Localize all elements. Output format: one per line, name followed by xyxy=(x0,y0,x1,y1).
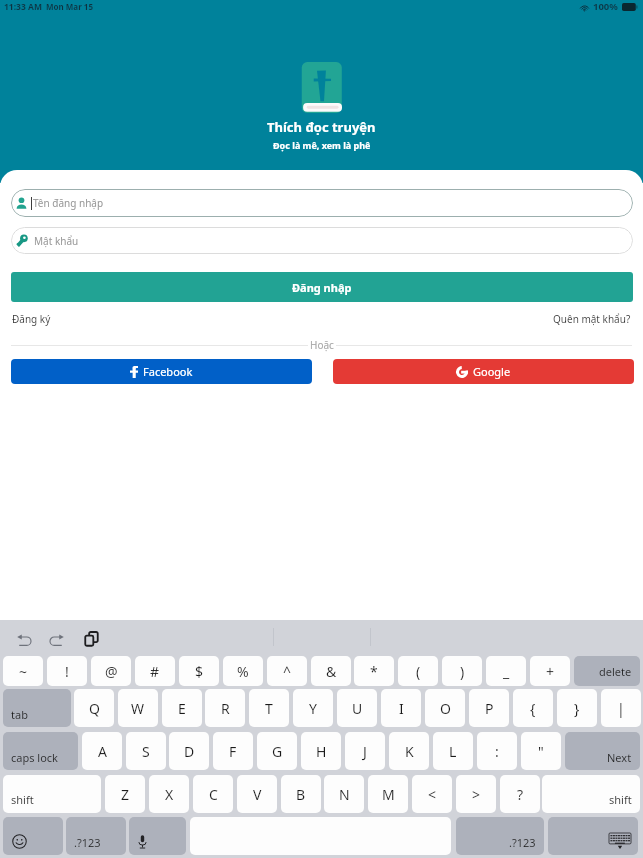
button[interactable]: Redo xyxy=(47,631,67,649)
staticText: Y xyxy=(309,699,317,718)
button[interactable]: M xyxy=(368,775,408,813)
button[interactable]: Undo xyxy=(14,631,34,649)
staticText: H xyxy=(316,742,327,761)
staticText: ) xyxy=(460,662,465,681)
staticText: & xyxy=(326,662,337,681)
button[interactable]: shift xyxy=(542,775,640,813)
button[interactable]: : xyxy=(477,732,517,770)
staticText: Tên đăng nhập xyxy=(33,196,104,210)
button[interactable]: & xyxy=(311,656,351,686)
staticText: C xyxy=(209,785,218,804)
button[interactable]: Q xyxy=(74,689,114,727)
staticText: " xyxy=(538,742,544,761)
button[interactable]: B xyxy=(281,775,321,813)
staticText: 100% xyxy=(593,0,618,13)
button[interactable]: @ xyxy=(91,656,131,686)
staticText: W xyxy=(131,699,145,718)
button[interactable]: Google xyxy=(333,359,634,384)
button[interactable]: X xyxy=(149,775,189,813)
staticText: G xyxy=(272,742,283,761)
button[interactable]: R xyxy=(205,689,245,727)
button[interactable]: .?123 xyxy=(456,817,544,855)
staticText: X xyxy=(165,785,174,804)
button[interactable]: ( xyxy=(398,656,438,686)
button[interactable]: D xyxy=(169,732,209,770)
button[interactable]: Mật khẩu xyxy=(11,227,633,254)
button[interactable]: caps lock xyxy=(3,732,78,770)
button[interactable]: Y xyxy=(293,689,333,727)
button[interactable]: | xyxy=(601,689,641,727)
button[interactable]: { xyxy=(513,689,553,727)
button[interactable]: C xyxy=(193,775,233,813)
staticText: | xyxy=(617,699,625,718)
staticText: R xyxy=(221,699,230,718)
button[interactable]: Facebook xyxy=(11,359,312,384)
staticText: Đăng nhập xyxy=(292,280,352,295)
button[interactable]: ? xyxy=(500,775,540,813)
staticText: K xyxy=(405,742,414,761)
button[interactable]: % xyxy=(223,656,263,686)
button[interactable]: Tên đăng nhập xyxy=(11,189,633,217)
staticText: .?123 xyxy=(509,835,536,850)
staticText: delete xyxy=(599,664,632,679)
staticText: 11:33 AM xyxy=(4,1,42,13)
button[interactable]: ~ xyxy=(3,656,43,686)
button[interactable]: K xyxy=(389,732,429,770)
button[interactable]: tab xyxy=(3,689,71,727)
button[interactable]: } xyxy=(557,689,597,727)
staticText: > xyxy=(472,785,481,804)
staticText: * xyxy=(370,662,378,681)
button[interactable]: F xyxy=(213,732,253,770)
button[interactable]: W xyxy=(118,689,158,727)
staticText: ( xyxy=(416,662,421,681)
button[interactable]: ! xyxy=(47,656,87,686)
button[interactable]: L xyxy=(433,732,473,770)
staticText: V xyxy=(253,785,262,804)
button[interactable]: > xyxy=(456,775,496,813)
button[interactable]: $ xyxy=(179,656,219,686)
button[interactable]: O xyxy=(425,689,465,727)
staticText: O xyxy=(440,699,451,718)
button[interactable]: S xyxy=(126,732,166,770)
button[interactable]: delete xyxy=(574,656,640,686)
button[interactable]: N xyxy=(324,775,364,813)
staticText: tab xyxy=(11,707,28,722)
button[interactable]: U xyxy=(337,689,377,727)
button[interactable]: P xyxy=(469,689,509,727)
button[interactable]: V xyxy=(237,775,277,813)
button[interactable]: Emoji xyxy=(3,817,63,855)
button[interactable]: shift xyxy=(3,775,101,813)
button[interactable]: Đăng ký xyxy=(12,312,51,326)
staticText: $ xyxy=(195,662,204,681)
button[interactable]: < xyxy=(412,775,452,813)
staticText: shift xyxy=(609,792,632,807)
button[interactable]: + xyxy=(530,656,570,686)
staticText: P xyxy=(485,699,494,718)
button[interactable]: H xyxy=(301,732,341,770)
button[interactable]: Dictation xyxy=(129,817,186,855)
button[interactable]: Đăng nhập xyxy=(11,272,633,302)
button[interactable]: Z xyxy=(105,775,145,813)
button[interactable]: Hide keyboard xyxy=(548,817,638,855)
staticText: J xyxy=(363,742,367,761)
button[interactable]: ) xyxy=(442,656,482,686)
button[interactable]: Next xyxy=(565,732,640,770)
button[interactable]: E xyxy=(162,689,202,727)
button[interactable]: * xyxy=(354,656,394,686)
button[interactable]: _ xyxy=(486,656,526,686)
button[interactable]: T xyxy=(249,689,289,727)
button[interactable]: .?123 xyxy=(66,817,126,855)
button[interactable]: J xyxy=(345,732,385,770)
button[interactable]: # xyxy=(135,656,175,686)
button[interactable]: " xyxy=(521,732,561,770)
button[interactable]: Copy xyxy=(82,631,100,646)
staticText: @ xyxy=(105,662,118,681)
button[interactable]: ^ xyxy=(267,656,307,686)
button[interactable]: Quên mật khẩu? xyxy=(553,312,631,326)
staticText: Next xyxy=(607,750,632,765)
staticText: { xyxy=(530,699,536,718)
button[interactable]: G xyxy=(257,732,297,770)
button[interactable]: I xyxy=(381,689,421,727)
button[interactable]: A xyxy=(82,732,122,770)
